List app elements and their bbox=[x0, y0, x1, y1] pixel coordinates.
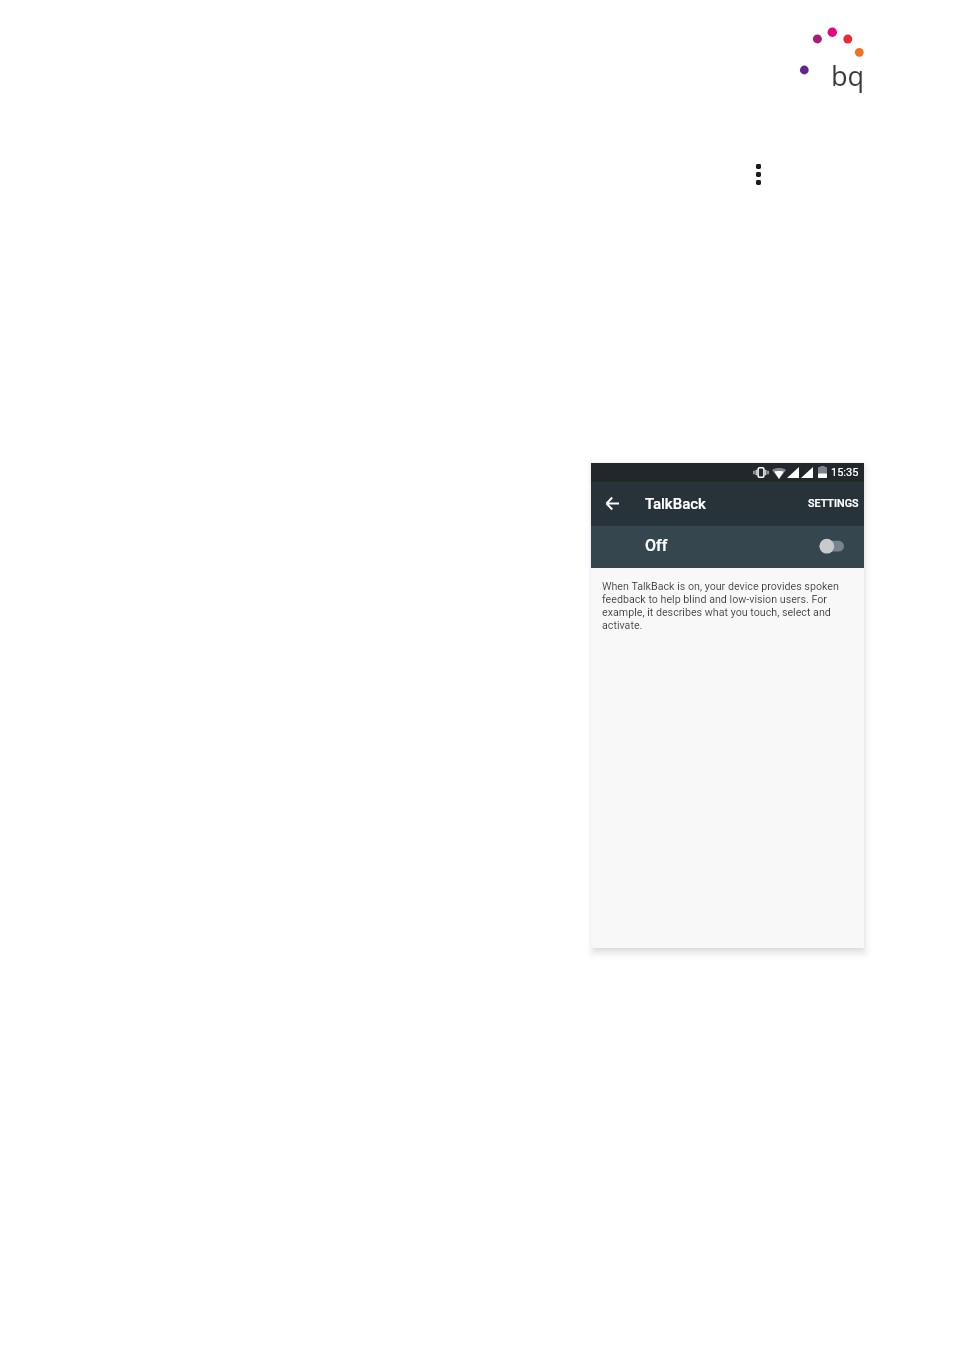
button[interactable]: TalkBack off bbox=[591, 526, 864, 568]
button[interactable]: Back bbox=[596, 490, 628, 517]
staticText: 15:35 bbox=[831, 466, 859, 479]
staticText: SETTINGS bbox=[808, 497, 859, 510]
staticText: Off bbox=[645, 536, 668, 555]
staticText: TalkBack bbox=[645, 495, 706, 513]
staticText: bq bbox=[831, 57, 865, 94]
button[interactable]: More options bbox=[746, 152, 771, 197]
button[interactable]: SETTINGS bbox=[798, 487, 864, 520]
staticText: When TalkBack is on, your device provide… bbox=[602, 580, 845, 632]
